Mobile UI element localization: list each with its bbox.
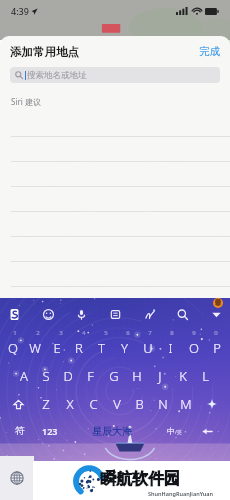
button[interactable]: E <box>46 337 68 359</box>
button[interactable]: I <box>159 337 182 359</box>
staticText: 中 <box>167 426 175 436</box>
staticText: /英 <box>175 429 182 436</box>
button[interactable]: 4 <box>72 328 95 337</box>
button[interactable]: S <box>35 365 57 387</box>
staticText: B <box>135 395 144 413</box>
button[interactable]: 2 <box>26 328 49 337</box>
staticText: 1 <box>13 329 17 337</box>
button[interactable]: O <box>182 337 205 359</box>
button[interactable]: G <box>102 365 125 387</box>
button[interactable]: Account <box>213 298 223 308</box>
button[interactable]: R <box>68 337 90 359</box>
staticText: 星辰大海 <box>92 425 132 438</box>
staticText: O <box>189 339 199 357</box>
button[interactable]: M <box>174 393 197 415</box>
button[interactable] <box>0 237 230 262</box>
staticText: N <box>158 395 168 413</box>
staticText: Siri 建议 <box>11 96 41 107</box>
staticText: F <box>87 367 94 385</box>
button[interactable]: 5 <box>95 328 117 337</box>
button[interactable] <box>0 112 230 137</box>
button[interactable]: B <box>128 393 151 415</box>
staticText: X <box>66 395 74 413</box>
button[interactable]: 星辰大海 <box>66 420 158 442</box>
staticText: 5 <box>104 329 108 337</box>
staticText: S <box>42 367 50 385</box>
button[interactable]: T <box>90 337 113 359</box>
button[interactable]: Z <box>34 393 58 415</box>
button[interactable]: 3 <box>49 328 72 337</box>
button[interactable]: A <box>13 365 35 387</box>
staticText: T <box>98 339 105 357</box>
button[interactable]: D <box>57 365 79 387</box>
button[interactable]: 0 <box>205 328 227 337</box>
button[interactable] <box>0 212 230 237</box>
button[interactable] <box>0 262 230 287</box>
staticText: L <box>202 367 209 385</box>
button[interactable]: 6 <box>117 328 139 337</box>
staticText: Q <box>8 339 18 357</box>
button[interactable]: 中 <box>158 420 190 442</box>
staticText: 4:39 <box>11 5 29 17</box>
staticText: U <box>143 339 153 357</box>
button[interactable]: 9 <box>183 328 205 337</box>
staticText: J <box>158 367 162 385</box>
button[interactable]: 1 <box>3 328 26 337</box>
staticText: M <box>180 395 192 413</box>
button[interactable] <box>0 137 230 162</box>
staticText: R <box>75 339 83 357</box>
staticText: Y <box>121 339 128 357</box>
button[interactable]: J <box>148 365 171 387</box>
staticText: Z <box>42 395 50 413</box>
button[interactable]: Voice input <box>74 307 88 321</box>
staticText: 添加常用地点 <box>10 45 79 59</box>
button[interactable]: 完成 <box>189 39 230 64</box>
button[interactable]: H <box>125 365 148 387</box>
button[interactable]: Shift <box>3 393 34 415</box>
button[interactable]: 符 <box>6 420 34 442</box>
staticText: 搜索地名或地址 <box>27 70 87 81</box>
staticText: D <box>63 367 73 385</box>
button[interactable]: Enter <box>190 420 224 442</box>
staticText: K <box>179 367 187 385</box>
staticText: G <box>109 367 119 385</box>
staticText: V <box>113 395 121 413</box>
button[interactable]: K <box>171 365 194 387</box>
button[interactable]: Sogou input <box>7 307 21 321</box>
button[interactable]: Backspace <box>197 393 227 415</box>
button[interactable]: Hide keyboard <box>209 307 223 321</box>
button[interactable]: Q <box>2 337 24 359</box>
button[interactable]: Y <box>113 337 136 359</box>
button[interactable]: L <box>194 365 217 387</box>
button[interactable]: V <box>105 393 128 415</box>
button[interactable]: U <box>136 337 159 359</box>
staticText: A <box>20 367 28 385</box>
staticText: 2 <box>36 329 40 337</box>
button[interactable]: C <box>82 393 105 415</box>
button[interactable]: W <box>24 337 46 359</box>
button[interactable]: 7 <box>139 328 161 337</box>
staticText: W <box>29 339 41 357</box>
staticText: H <box>132 367 142 385</box>
button[interactable]: P <box>205 337 228 359</box>
staticText: 0 <box>214 329 218 337</box>
button[interactable]: 123 <box>34 420 66 442</box>
button[interactable]: Search <box>175 307 189 321</box>
button[interactable]: N <box>151 393 174 415</box>
staticText: 9 <box>192 329 196 337</box>
staticText: 7 <box>148 329 152 337</box>
button[interactable]: X <box>58 393 82 415</box>
button[interactable]: Handwriting <box>142 307 156 321</box>
staticText: 8 <box>170 329 174 337</box>
staticText: 3 <box>59 329 63 337</box>
button[interactable] <box>0 187 230 212</box>
button[interactable] <box>0 162 230 187</box>
staticText: 符 <box>15 425 25 437</box>
button[interactable]: 搜索地名或地址 <box>10 67 220 83</box>
staticText: P <box>213 339 221 357</box>
button[interactable]: Clipboard <box>108 307 122 321</box>
button[interactable]: 8 <box>161 328 183 337</box>
button[interactable]: F <box>79 365 102 387</box>
staticText: 4 <box>82 329 86 337</box>
button[interactable]: Emoji <box>41 307 55 321</box>
